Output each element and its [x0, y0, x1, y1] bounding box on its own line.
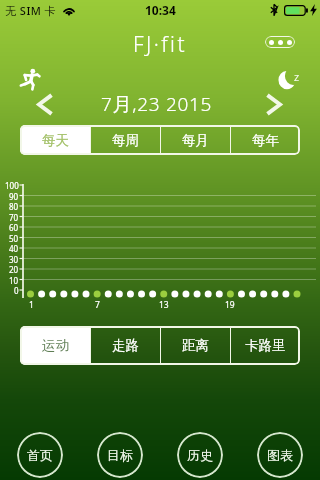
staticText: 50: [9, 233, 19, 243]
button[interactable]: 每天: [20, 125, 90, 155]
staticText: 60: [9, 222, 19, 232]
button[interactable]: 目标: [97, 432, 143, 478]
staticText: 90: [9, 191, 19, 201]
button[interactable]: 走路: [90, 326, 160, 365]
staticText: 13: [159, 299, 169, 311]
staticText: 19: [225, 299, 235, 311]
staticText: 1: [29, 299, 34, 311]
staticText: 走路: [112, 337, 139, 354]
staticText: 运动: [42, 337, 69, 354]
staticText: 图表: [267, 447, 293, 463]
staticText: 20: [9, 264, 19, 274]
staticText: 7月,23 2015: [101, 91, 213, 117]
button[interactable]: Previous day: [36, 94, 53, 115]
button[interactable]: 每月: [160, 125, 230, 155]
button[interactable]: 距离: [160, 326, 230, 365]
staticText: 10: [9, 275, 19, 285]
staticText: 80: [9, 201, 19, 211]
staticText: 每天: [42, 132, 69, 149]
staticText: 每年: [252, 132, 279, 149]
button[interactable]: Sleep: [278, 67, 301, 90]
staticText: 7: [95, 299, 100, 311]
button[interactable]: More options: [265, 36, 295, 48]
button[interactable]: 图表: [257, 432, 303, 478]
button[interactable]: 卡路里: [230, 326, 300, 365]
button[interactable]: 每年: [230, 125, 300, 155]
staticText: 10:34: [145, 2, 176, 18]
staticText: 0: [14, 285, 19, 295]
button[interactable]: 每周: [90, 125, 160, 155]
staticText: 距离: [182, 337, 209, 354]
staticText: 目标: [107, 447, 133, 463]
button[interactable]: 首页: [17, 432, 63, 478]
button[interactable]: Activity: [19, 68, 42, 91]
staticText: 卡路里: [245, 337, 286, 354]
button[interactable]: 历史: [177, 432, 223, 478]
staticText: 100: [5, 180, 19, 190]
staticText: 首页: [27, 447, 53, 463]
staticText: 无 SIM 卡: [5, 3, 57, 18]
button[interactable]: 运动: [20, 326, 90, 365]
staticText: 70: [9, 212, 19, 222]
staticText: 历史: [187, 447, 213, 463]
staticText: 30: [9, 254, 19, 264]
staticText: 每周: [112, 132, 139, 149]
staticText: 每月: [182, 132, 209, 149]
staticText: FJ·fit: [133, 30, 187, 56]
staticText: z: [294, 69, 300, 84]
staticText: 40: [9, 243, 19, 253]
button[interactable]: Next day: [266, 94, 283, 115]
